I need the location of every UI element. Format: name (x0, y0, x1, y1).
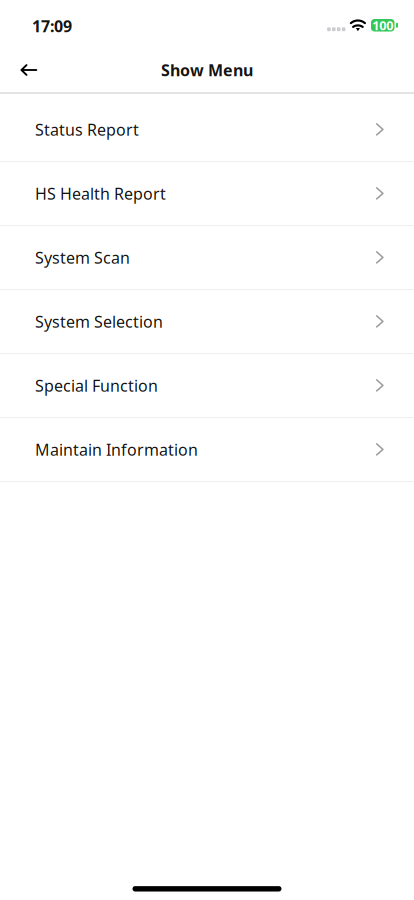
button[interactable]: HS Health Report (0, 162, 414, 226)
button[interactable]: System Scan (0, 226, 414, 290)
button[interactable]: Back (0, 48, 53, 92)
staticText: System Scan (35, 247, 130, 268)
staticText: HS Health Report (35, 183, 166, 204)
button[interactable]: Maintain Information (0, 418, 414, 482)
staticText: Maintain Information (35, 439, 198, 460)
staticText: Show Menu (161, 59, 253, 81)
staticText: 100 (372, 17, 393, 34)
staticText: 17:09 (32, 15, 72, 37)
button[interactable]: System Selection (0, 290, 414, 354)
button[interactable]: Status Report (0, 98, 414, 162)
button[interactable]: Special Function (0, 354, 414, 418)
staticText: Status Report (35, 119, 139, 140)
staticText: System Selection (35, 311, 163, 332)
staticText: Special Function (35, 375, 158, 396)
